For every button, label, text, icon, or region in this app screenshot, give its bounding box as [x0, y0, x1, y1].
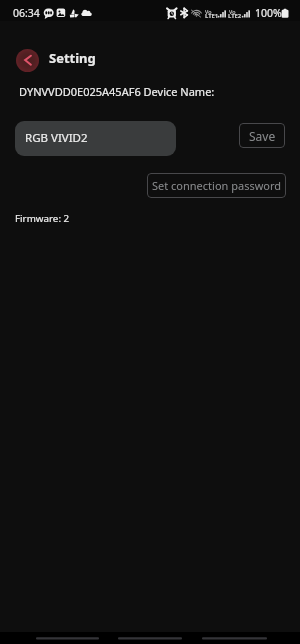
staticText: DYNVVDD0E025A45AF6 Device Name:: [19, 84, 215, 99]
staticText: 06:34: [13, 6, 40, 20]
staticText: LTE2: [228, 12, 242, 20]
button[interactable]: Set connection password: [147, 173, 286, 198]
button[interactable]: RGB VIVID2: [15, 121, 176, 156]
staticText: Firmware: 2: [15, 212, 70, 225]
button[interactable]: Save: [239, 123, 285, 148]
staticText: LTE1: [205, 12, 219, 20]
staticText: Save: [249, 128, 276, 144]
staticText: Setting: [49, 49, 96, 67]
button[interactable]: Back: [16, 49, 39, 72]
staticText: Vo: [205, 8, 212, 15]
staticText: 100%: [255, 6, 282, 20]
staticText: RGB VIVID2: [25, 130, 88, 146]
staticText: Vo: [229, 8, 236, 15]
staticText: Set connection password: [152, 178, 282, 193]
